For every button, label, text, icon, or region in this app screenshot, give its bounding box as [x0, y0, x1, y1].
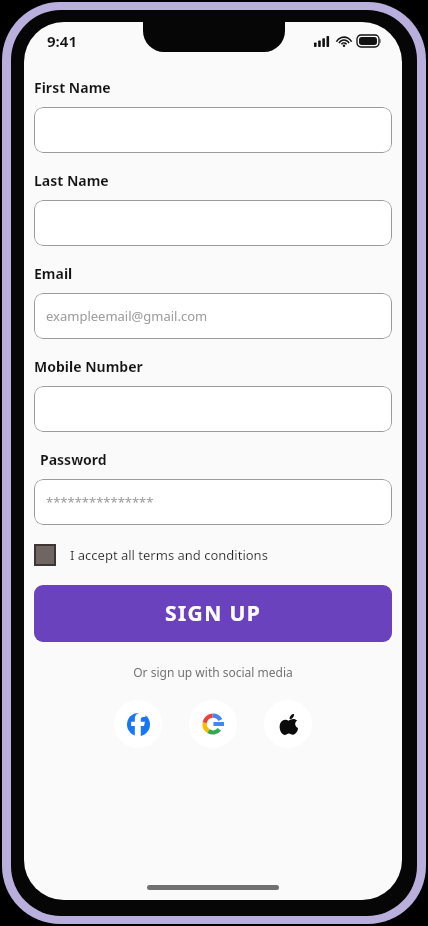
staticText: Password — [40, 450, 107, 469]
button[interactable]: Sign up with Google — [189, 700, 237, 748]
staticText: exampleemail@gmail.com — [46, 307, 208, 325]
staticText: SIGN UP — [165, 599, 262, 628]
staticText: *************** — [46, 493, 154, 511]
button[interactable]: I accept all terms and conditions — [34, 544, 392, 566]
staticText: I accept all terms and conditions — [70, 546, 268, 564]
staticText: Email — [34, 264, 73, 283]
button[interactable] — [34, 200, 392, 246]
staticText: Or sign up with social media — [34, 664, 392, 680]
button[interactable]: exampleemail@gmail.com — [34, 293, 392, 339]
button[interactable]: *************** — [34, 479, 392, 525]
staticText: Mobile Number — [34, 357, 143, 376]
staticText: First Name — [34, 78, 111, 97]
button[interactable]: Sign up with Apple — [264, 700, 312, 748]
staticText: 9:41 — [47, 31, 77, 51]
button[interactable] — [34, 386, 392, 432]
button[interactable] — [34, 107, 392, 153]
button[interactable]: Sign up with Facebook — [114, 700, 162, 748]
staticText: Last Name — [34, 171, 109, 190]
button[interactable]: SIGN UP — [34, 585, 392, 642]
